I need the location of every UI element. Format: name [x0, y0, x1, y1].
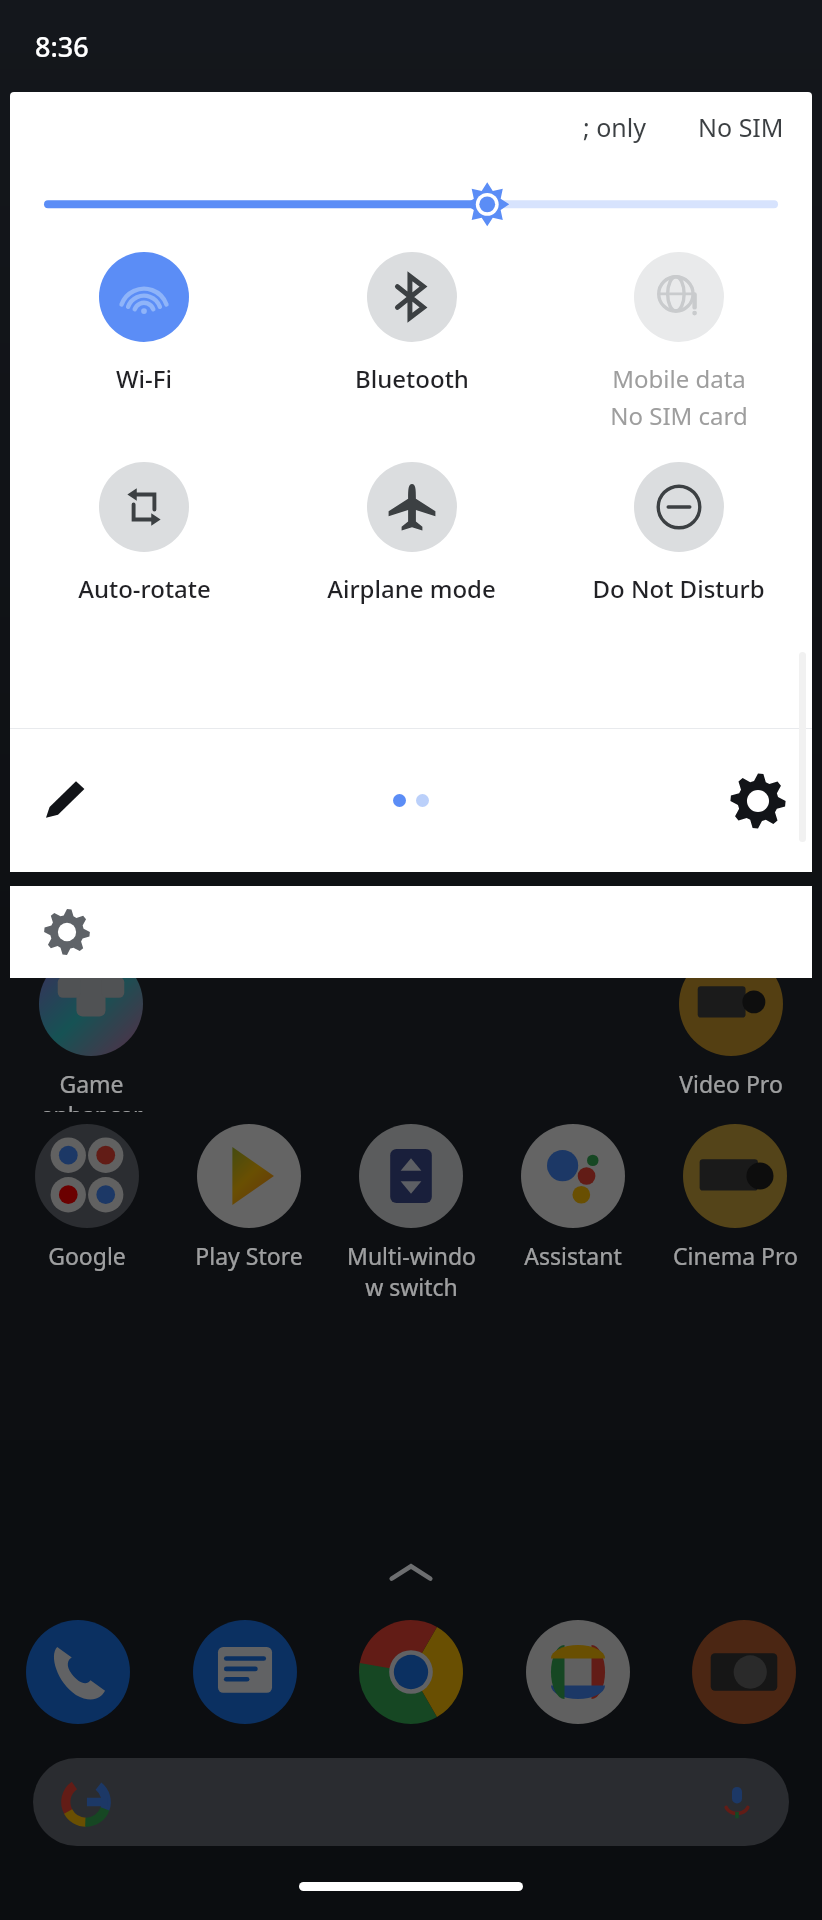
staticText: Play Store: [195, 1240, 303, 1271]
staticText: Google: [48, 1240, 126, 1271]
staticText: Bluetooth: [355, 362, 469, 395]
staticText: Do Not Disturb: [592, 572, 765, 605]
button[interactable]: Edit tiles: [34, 771, 94, 831]
button[interactable]: Game enhancer: [18, 952, 164, 1112]
button[interactable]: App: [14, 1608, 142, 1736]
button[interactable]: Bluetooth: [278, 242, 545, 452]
button[interactable]: App: [181, 1608, 309, 1736]
staticText: Video Pro: [679, 1068, 783, 1099]
button[interactable]: Do Not Disturb: [545, 452, 812, 662]
staticText: 8:36: [35, 28, 89, 65]
button[interactable]: Brightness: [10, 170, 812, 236]
staticText: Game enhancer: [40, 1068, 143, 1112]
staticText: Cinema Pro: [673, 1240, 798, 1271]
button[interactable]: Video Pro: [658, 952, 804, 1099]
button[interactable]: Cinema Pro: [662, 1124, 808, 1271]
staticText: ; only: [583, 110, 646, 144]
button[interactable]: Notification settings: [45, 910, 89, 954]
button[interactable]: Google: [14, 1124, 160, 1271]
staticText: Mobile data: [612, 362, 746, 395]
button[interactable]: App: [680, 1608, 808, 1736]
button[interactable]: Mobile data: [545, 242, 812, 452]
button[interactable]: Multi-windo w switch: [338, 1124, 484, 1302]
button[interactable]: Assistant: [500, 1124, 646, 1271]
button[interactable]: Auto-rotate: [10, 452, 278, 662]
button[interactable]: Settings: [728, 771, 788, 831]
button[interactable]: Wi-Fi: [10, 242, 278, 452]
button[interactable]: Play Store: [176, 1124, 322, 1271]
button[interactable]: App: [514, 1608, 642, 1736]
button[interactable]: Notification settings: [10, 886, 812, 978]
button[interactable]: App: [347, 1608, 475, 1736]
button[interactable]: Airplane mode: [278, 452, 545, 662]
staticText: Assistant: [524, 1240, 622, 1271]
staticText: No SIM card: [610, 399, 748, 432]
staticText: Airplane mode: [327, 572, 496, 605]
staticText: Wi-Fi: [116, 362, 172, 395]
staticText: Auto-rotate: [78, 572, 211, 605]
staticText: Multi-windo w switch: [347, 1240, 476, 1302]
button[interactable]: [33, 1758, 789, 1846]
staticText: No SIM: [698, 110, 784, 144]
